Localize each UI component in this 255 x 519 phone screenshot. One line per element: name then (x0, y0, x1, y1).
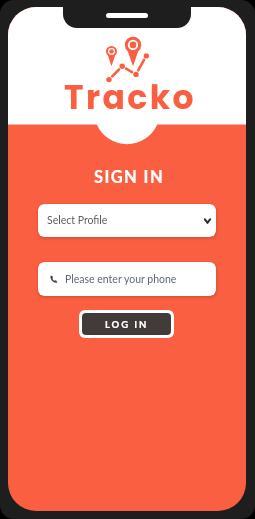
staticText: Select Profile (47, 214, 108, 227)
button[interactable]: Please enter your phone (38, 262, 216, 296)
staticText: Tracko (11, 74, 246, 120)
staticText: Please enter your phone (65, 273, 177, 286)
staticText: LOG IN (105, 319, 149, 330)
button[interactable]: Select Profile (38, 204, 216, 237)
staticText: SIGN IN (10, 167, 246, 187)
button[interactable]: LOG IN (82, 313, 171, 335)
